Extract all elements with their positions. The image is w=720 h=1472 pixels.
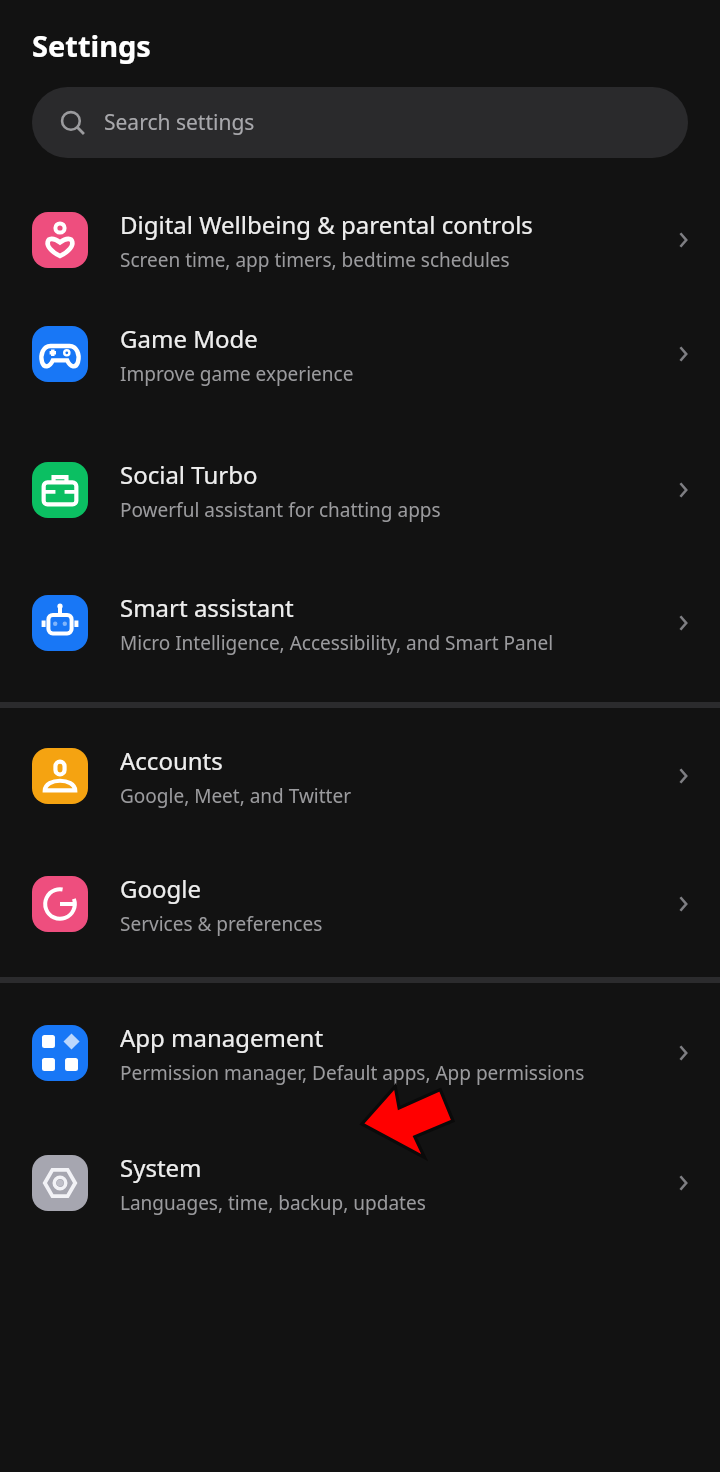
staticText: Google bbox=[120, 872, 201, 905]
staticText: System bbox=[120, 1151, 202, 1184]
staticText: Micro Intelligence, Accessibility, and S… bbox=[120, 630, 554, 656]
staticText: Game Mode bbox=[120, 322, 258, 355]
button[interactable]: Accounts bbox=[0, 708, 720, 844]
button[interactable]: App management bbox=[0, 983, 720, 1123]
staticText: Screen time, app timers, bedtime schedul… bbox=[120, 247, 510, 273]
staticText: Settings bbox=[32, 26, 151, 65]
button[interactable]: System bbox=[0, 1123, 720, 1243]
staticText: Search settings bbox=[104, 108, 255, 137]
staticText: Improve game experience bbox=[120, 361, 354, 387]
button[interactable]: Social Turbo bbox=[0, 422, 720, 558]
staticText: Languages, time, backup, updates bbox=[120, 1190, 426, 1216]
button[interactable]: Search settings bbox=[32, 87, 688, 158]
staticText: Google, Meet, and Twitter bbox=[120, 783, 352, 809]
staticText: Social Turbo bbox=[120, 458, 258, 491]
button[interactable]: Smart assistant bbox=[0, 558, 720, 688]
staticText: Powerful assistant for chatting apps bbox=[120, 497, 441, 523]
button[interactable]: Game Mode bbox=[0, 286, 720, 422]
staticText: Digital Wellbeing & parental controls bbox=[120, 208, 533, 241]
staticText: Services & preferences bbox=[120, 911, 323, 937]
staticText: Permission manager, Default apps, App pe… bbox=[120, 1060, 585, 1086]
staticText: Accounts bbox=[120, 744, 223, 777]
button[interactable]: Digital Wellbeing & parental controls bbox=[0, 194, 720, 286]
staticText: Smart assistant bbox=[120, 591, 294, 624]
button[interactable]: Google bbox=[0, 844, 720, 964]
staticText: App management bbox=[120, 1021, 324, 1054]
